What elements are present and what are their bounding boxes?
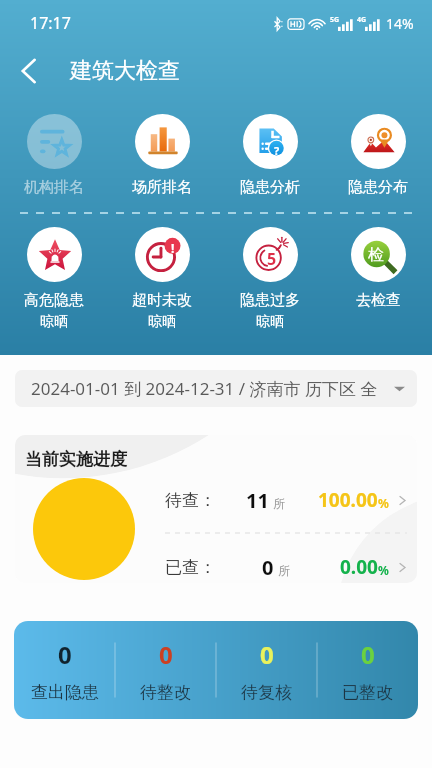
staticText: 晾晒 bbox=[256, 313, 284, 331]
staticText: 当前实施进度 bbox=[25, 449, 127, 470]
staticText: 0.00 bbox=[340, 554, 378, 580]
staticText: 查出隐患 bbox=[31, 682, 99, 703]
staticText: 隐患分析 bbox=[240, 178, 300, 197]
staticText: 建筑大检查 bbox=[70, 57, 180, 85]
button[interactable]: 检 bbox=[324, 227, 432, 310]
staticText: 4G bbox=[357, 15, 367, 25]
button[interactable]: 2024-01-01 到 2024-12-31 / 济南市 历下区 全 bbox=[15, 370, 417, 407]
button[interactable]: ? bbox=[216, 114, 324, 197]
staticText: 2024-01-01 到 2024-12-31 / 济南市 历下区 全 bbox=[31, 377, 378, 400]
button[interactable]: ! bbox=[108, 227, 216, 331]
button[interactable]: 0 bbox=[115, 621, 216, 719]
staticText: 超时未改 bbox=[132, 291, 192, 310]
staticText: 隐患分布 bbox=[348, 178, 408, 197]
staticText: 0 bbox=[262, 554, 274, 580]
button[interactable]: 已查： bbox=[165, 554, 407, 580]
staticText: 100.00 bbox=[318, 487, 378, 513]
staticText: 17:17 bbox=[30, 12, 71, 34]
staticText: 晾晒 bbox=[148, 313, 176, 331]
button[interactable]: 0 bbox=[317, 621, 418, 719]
staticText: 0 bbox=[159, 638, 173, 671]
staticText: 5 bbox=[267, 248, 277, 270]
staticText: ? bbox=[274, 143, 280, 158]
staticText: 14% bbox=[386, 14, 414, 33]
staticText: 检 bbox=[368, 245, 384, 265]
staticText: 去检查 bbox=[356, 291, 401, 310]
staticText: % bbox=[378, 495, 389, 511]
button[interactable]: 0 bbox=[14, 621, 115, 719]
button[interactable]: Back bbox=[0, 47, 58, 95]
staticText: 0 bbox=[361, 638, 375, 671]
staticText: 待查： bbox=[165, 490, 216, 511]
button[interactable]: 5 bbox=[216, 227, 324, 331]
staticText: 所 bbox=[273, 496, 285, 511]
button[interactable]: 场所排名 bbox=[108, 114, 216, 197]
button[interactable]: 机构排名 bbox=[0, 114, 108, 197]
staticText: 场所排名 bbox=[132, 178, 192, 197]
staticText: 待复核 bbox=[241, 682, 292, 703]
button[interactable]: 0 bbox=[216, 621, 317, 719]
staticText: 所 bbox=[278, 563, 290, 578]
staticText: % bbox=[378, 562, 389, 578]
staticText: 机构排名 bbox=[24, 178, 84, 197]
staticText: 5G bbox=[330, 15, 340, 25]
button[interactable]: 高危隐患 bbox=[0, 227, 108, 331]
staticText: ! bbox=[171, 240, 175, 256]
staticText: 0 bbox=[260, 638, 274, 671]
staticText: 已查： bbox=[165, 557, 216, 578]
staticText: 高危隐患 bbox=[24, 291, 84, 310]
staticText: 已整改 bbox=[342, 682, 393, 703]
staticText: 11 bbox=[246, 487, 269, 513]
staticText: 晾晒 bbox=[40, 313, 68, 331]
staticText: 0 bbox=[58, 638, 72, 671]
button[interactable]: 待查： bbox=[165, 487, 407, 513]
staticText: 隐患过多 bbox=[240, 291, 300, 310]
button[interactable]: 隐患分布 bbox=[324, 114, 432, 197]
staticText: 待整改 bbox=[140, 682, 191, 703]
